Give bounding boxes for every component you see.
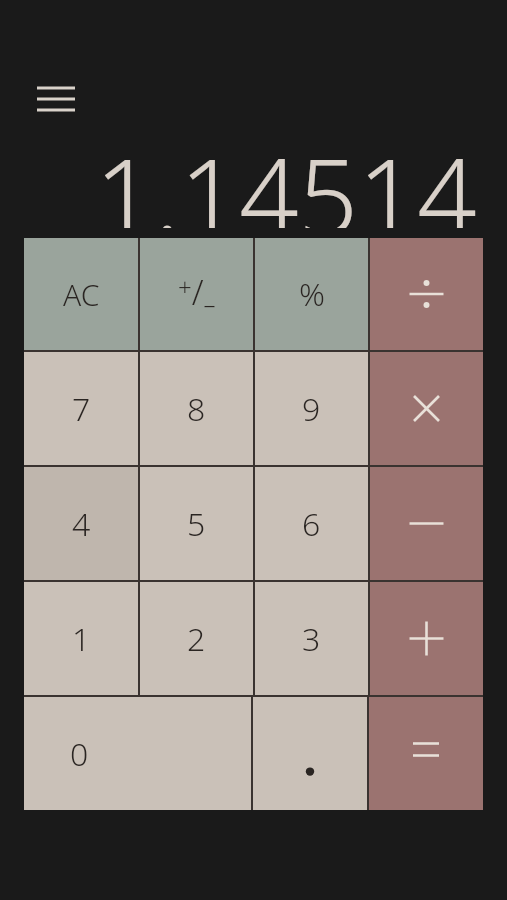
button[interactable]: 5: [140, 467, 253, 580]
staticText: 6: [302, 502, 321, 546]
staticText: 1.14514: [95, 124, 477, 228]
staticText: +/–: [178, 269, 216, 320]
button[interactable]: 9: [255, 352, 368, 465]
button[interactable]: AC: [24, 238, 138, 350]
staticText: AC: [63, 274, 100, 315]
button[interactable]: 1: [24, 582, 138, 695]
button[interactable]: 7: [24, 352, 138, 465]
button[interactable]: 0: [24, 697, 251, 810]
staticText: 8: [187, 387, 206, 431]
button[interactable]: Decimal point: [253, 697, 367, 810]
button[interactable]: %: [255, 238, 368, 350]
button[interactable]: Multiply: [370, 352, 483, 465]
button[interactable]: 6: [255, 467, 368, 580]
button[interactable]: +/–: [140, 238, 253, 350]
button[interactable]: Add: [370, 582, 483, 695]
staticText: 5: [187, 502, 206, 546]
staticText: 4: [72, 502, 91, 546]
button[interactable]: 8: [140, 352, 253, 465]
button[interactable]: 3: [255, 582, 368, 695]
button[interactable]: Menu: [26, 76, 86, 124]
staticText: 1: [72, 617, 91, 661]
button[interactable]: 2: [140, 582, 253, 695]
button[interactable]: 4: [24, 467, 138, 580]
staticText: 9: [302, 387, 321, 431]
button[interactable]: Divide: [370, 238, 483, 350]
staticText: 3: [302, 617, 321, 661]
button[interactable]: Equals: [369, 697, 483, 810]
staticText: 7: [72, 387, 91, 431]
button[interactable]: Subtract: [370, 467, 483, 580]
staticText: %: [299, 272, 325, 316]
staticText: 0: [70, 732, 89, 776]
staticText: 2: [187, 617, 206, 661]
